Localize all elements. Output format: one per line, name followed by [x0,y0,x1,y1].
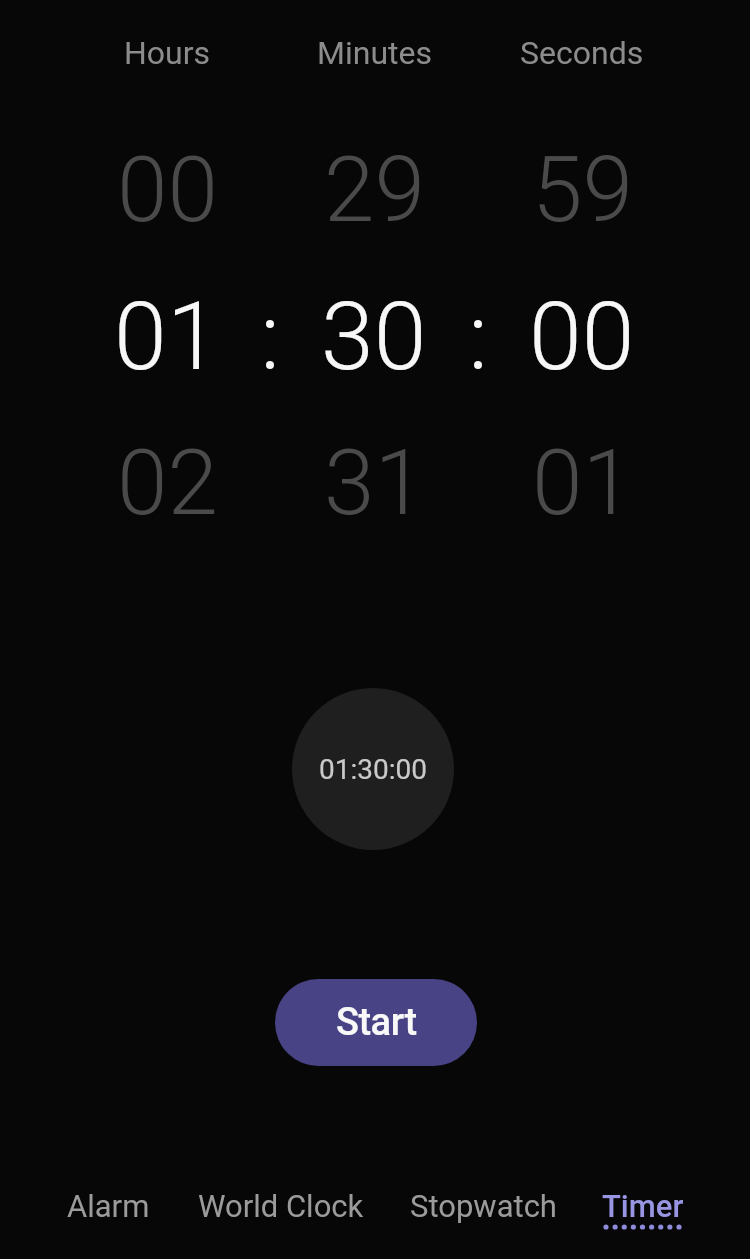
staticText: Seconds [520,34,644,72]
staticText: 01 [114,281,220,392]
button[interactable]: Stopwatch [383,1176,583,1236]
staticText: Start [336,1000,417,1045]
staticText: Stopwatch [410,1188,557,1224]
button[interactable]: 01:30:00 [292,688,454,850]
staticText: 30 [321,281,427,392]
staticText: Hours [124,34,211,72]
staticText: 59 [532,137,633,244]
staticText: 31 [324,430,425,537]
button[interactable]: Start [275,979,477,1066]
staticText: World Clock [198,1188,364,1224]
staticText: 02 [117,430,218,537]
staticText: 01:30:00 [319,753,427,786]
button[interactable]: Alarm [8,1176,208,1236]
staticText: 01 [532,430,633,537]
staticText: Alarm [67,1188,150,1224]
staticText: Minutes [317,34,432,72]
staticText: 00 [529,281,635,392]
button[interactable]: Timer [573,1176,713,1236]
button[interactable]: World Clock [181,1176,381,1236]
staticText: Timer [602,1188,684,1224]
staticText: 29 [324,137,425,244]
staticText: 00 [117,137,218,244]
